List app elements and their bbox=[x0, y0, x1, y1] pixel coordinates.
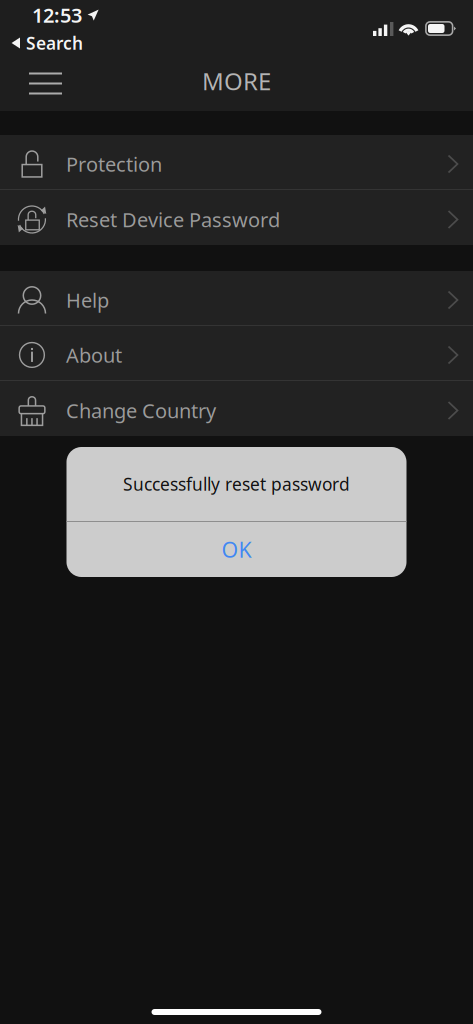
staticText: OK bbox=[221, 535, 251, 564]
button[interactable]: Protection bbox=[0, 135, 473, 190]
staticText: Search bbox=[26, 31, 83, 54]
staticText: About bbox=[66, 342, 122, 368]
staticText: Help bbox=[66, 287, 109, 313]
staticText: 12:53 bbox=[32, 2, 82, 28]
button[interactable]: Help bbox=[0, 271, 473, 326]
staticText: Successfully reset password bbox=[123, 472, 350, 495]
button[interactable]: About bbox=[0, 326, 473, 381]
staticText: Change Country bbox=[66, 397, 216, 424]
staticText: Reset Device Password bbox=[66, 206, 280, 233]
button[interactable]: Change Country bbox=[0, 381, 473, 436]
button[interactable]: Reset Device Password bbox=[0, 190, 473, 245]
button[interactable]: Menu bbox=[0, 56, 76, 111]
staticText: Protection bbox=[66, 151, 162, 177]
staticText: MORE bbox=[202, 65, 271, 97]
button[interactable]: OK bbox=[66, 522, 406, 577]
